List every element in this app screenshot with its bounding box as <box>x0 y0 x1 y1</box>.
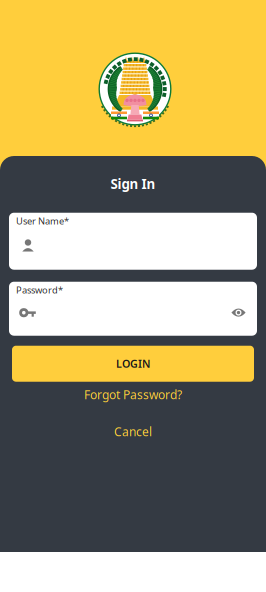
button[interactable]: Show password <box>231 306 257 319</box>
staticText: Forgot Password? <box>84 387 182 403</box>
staticText: User Name* <box>16 215 69 227</box>
staticText: Password* <box>16 284 63 296</box>
staticText: Sign In <box>110 175 155 193</box>
button[interactable]: Cancel <box>106 421 160 442</box>
button[interactable]: Forgot Password? <box>76 384 190 406</box>
button[interactable]: LOGIN <box>12 346 254 382</box>
staticText: Cancel <box>114 424 152 439</box>
staticText: LOGIN <box>116 357 150 371</box>
